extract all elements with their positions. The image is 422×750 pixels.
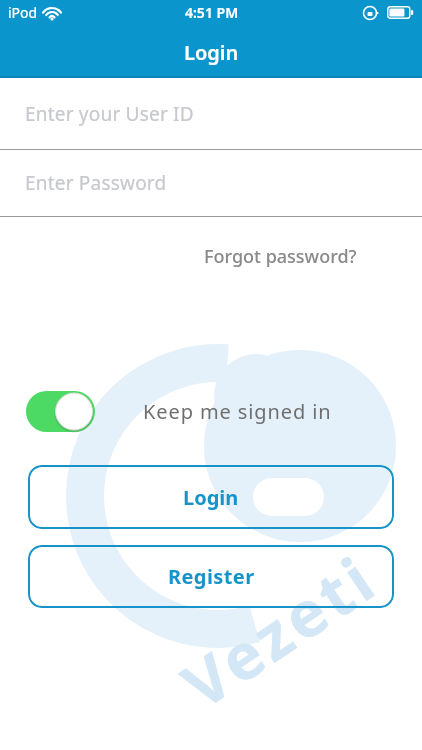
staticText: iPod xyxy=(8,3,38,22)
staticText: Login xyxy=(184,39,239,66)
staticText: Enter Password xyxy=(25,170,167,196)
staticText: 4:51 PM xyxy=(185,3,239,22)
staticText: Keep me signed in xyxy=(143,398,332,425)
staticText: Login xyxy=(183,484,239,511)
staticText: Enter your User ID xyxy=(25,101,194,127)
button[interactable]: Enter your User ID xyxy=(0,78,422,149)
button[interactable]: Forgot password? xyxy=(204,244,357,269)
staticText: Vezeti xyxy=(165,535,393,727)
button[interactable] xyxy=(26,391,95,432)
staticText: Register xyxy=(168,563,255,590)
button[interactable]: Enter Password xyxy=(0,150,422,216)
button[interactable]: Login xyxy=(28,465,394,529)
button[interactable]: Register xyxy=(28,545,394,608)
